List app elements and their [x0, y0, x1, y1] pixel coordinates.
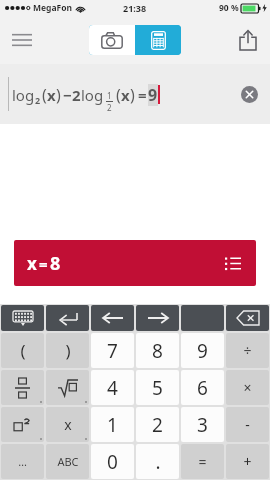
staticText: x	[27, 252, 37, 275]
button[interactable]: Left	[91, 305, 134, 331]
button[interactable]: Delete	[226, 305, 269, 331]
staticText: x	[64, 415, 72, 434]
staticText: )	[65, 339, 71, 362]
staticText: 2	[35, 94, 41, 106]
button[interactable]: 0	[91, 444, 134, 479]
button[interactable]: x	[46, 407, 89, 442]
staticText: (	[20, 339, 26, 362]
button[interactable]: Fraction	[1, 370, 44, 405]
button[interactable]: ABC	[46, 444, 89, 479]
button[interactable]: 7	[91, 333, 134, 368]
button[interactable]: 9	[181, 333, 224, 368]
staticText: 21:38	[123, 2, 147, 14]
staticText: -	[245, 415, 250, 434]
staticText: 2	[152, 412, 163, 438]
staticText: 6	[197, 375, 208, 401]
staticText: log	[12, 85, 35, 105]
button[interactable]: x	[14, 240, 256, 286]
button[interactable]: 2	[136, 407, 179, 442]
staticText: (	[42, 84, 47, 106]
staticText: 7	[107, 338, 118, 364]
staticText: −	[63, 85, 72, 105]
staticText: ×	[243, 378, 252, 397]
staticText: 2	[72, 85, 81, 105]
button[interactable]: )	[46, 333, 89, 368]
staticText: (	[116, 84, 121, 106]
staticText: …	[18, 454, 27, 469]
staticText: 1	[107, 412, 118, 438]
button[interactable]: Clear	[236, 81, 262, 107]
button[interactable]: +	[226, 444, 269, 479]
button[interactable]: 3	[181, 407, 224, 442]
button[interactable]: Calculator	[135, 25, 181, 55]
button[interactable]: Right	[136, 305, 179, 331]
button[interactable]: Square	[1, 407, 44, 442]
button[interactable]: Blank	[181, 305, 224, 331]
button[interactable]: 1	[91, 407, 134, 442]
staticText: +	[243, 452, 252, 471]
button[interactable]: 6	[181, 370, 224, 405]
staticText: 4	[107, 375, 118, 401]
staticText: 1	[107, 90, 112, 101]
staticText: 90 %	[219, 2, 239, 14]
button[interactable]: Share	[226, 18, 270, 62]
button[interactable]: Menu	[0, 18, 44, 62]
button[interactable]: ÷	[226, 333, 269, 368]
staticText: 0	[107, 449, 118, 475]
button[interactable]: 8	[136, 333, 179, 368]
staticText: 9	[197, 338, 208, 364]
button[interactable]: -	[226, 407, 269, 442]
button[interactable]: 4	[91, 370, 134, 405]
button[interactable]: …	[1, 444, 44, 479]
staticText: log	[81, 85, 104, 105]
staticText: x	[121, 85, 130, 105]
staticText: ÷	[243, 341, 252, 360]
staticText: .	[155, 449, 161, 475]
button[interactable]: Enter	[46, 305, 89, 331]
staticText: )	[130, 84, 135, 106]
button[interactable]: 5	[136, 370, 179, 405]
staticText: x	[47, 85, 56, 105]
staticText: =	[198, 452, 207, 471]
staticText: )	[56, 84, 61, 106]
staticText: 9	[148, 84, 158, 106]
button[interactable]: =	[181, 444, 224, 479]
staticText: 3	[197, 412, 208, 438]
staticText: =	[138, 85, 147, 105]
staticText: 8	[152, 338, 163, 364]
staticText: 2	[107, 102, 112, 113]
button[interactable]: Camera	[89, 25, 135, 55]
staticText: 5	[152, 375, 163, 401]
button[interactable]: Steps	[220, 250, 246, 276]
staticText: ABC	[57, 454, 79, 469]
button[interactable]: Hide keyboard	[1, 305, 44, 331]
staticText: 8	[50, 251, 61, 276]
staticText: MegaFon	[33, 2, 73, 14]
button[interactable]: (	[1, 333, 44, 368]
button[interactable]: ×	[226, 370, 269, 405]
button[interactable]: Square root	[46, 370, 89, 405]
button[interactable]: .	[136, 444, 179, 479]
staticText: =	[39, 254, 48, 274]
